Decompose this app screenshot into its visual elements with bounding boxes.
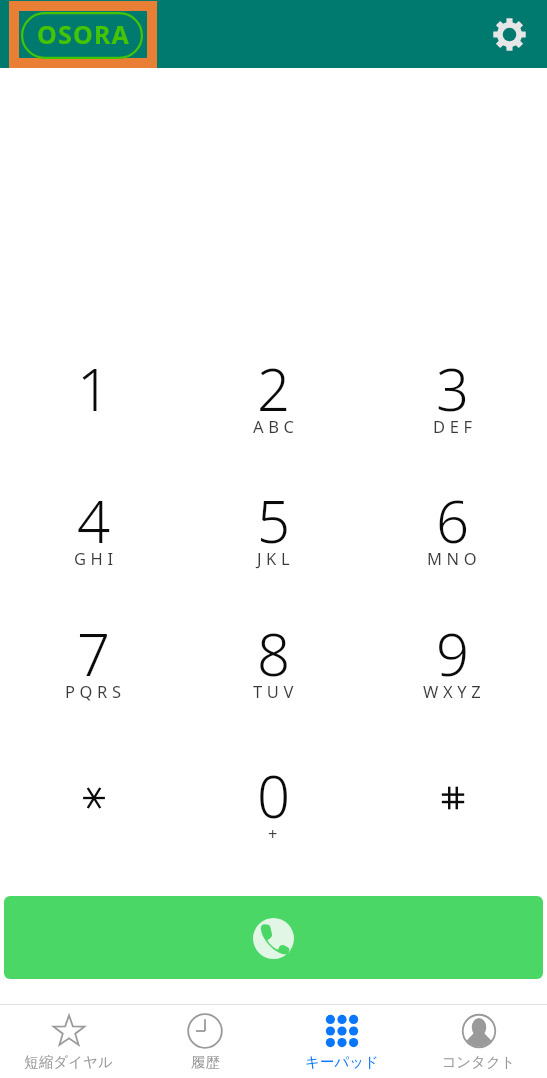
button[interactable]: pound (363, 745, 542, 865)
other: star (81, 785, 107, 811)
button[interactable]: 1 (4, 338, 183, 458)
other: pound (440, 785, 466, 811)
staticText: 0 (257, 756, 291, 835)
staticText: + (268, 822, 283, 844)
staticText: GHI (74, 547, 118, 569)
staticText: MNO (427, 547, 482, 569)
staticText: 9 (436, 614, 470, 693)
staticText: JKL (257, 547, 295, 569)
button[interactable]: star (4, 745, 183, 865)
staticText: 1 (77, 349, 111, 428)
staticText: DEF (433, 415, 477, 437)
button[interactable]: 短縮ダイヤル (0, 1005, 136, 1078)
staticText: 4 (77, 481, 111, 560)
staticText: ABC (253, 415, 299, 437)
staticText: 短縮ダイヤル (24, 1053, 113, 1071)
staticText: 2 (257, 349, 291, 428)
staticText: キーパッド (305, 1053, 379, 1071)
staticText: 8 (257, 614, 291, 693)
button[interactable]: OSORA (19, 11, 147, 58)
staticText: OSORA (37, 17, 131, 51)
button[interactable]: 3 (363, 338, 542, 458)
staticText: 5 (257, 481, 291, 560)
staticText: コンタクト (441, 1053, 516, 1071)
staticText: 7 (77, 614, 111, 693)
button[interactable]: 履歴 (136, 1005, 273, 1078)
button[interactable]: 2 (184, 338, 363, 458)
button[interactable]: 6 (363, 470, 542, 590)
button[interactable]: 0 (184, 745, 363, 865)
staticText: 履歴 (191, 1053, 220, 1071)
button[interactable]: 8 (184, 603, 363, 723)
staticText: PQRS (65, 680, 126, 702)
button[interactable]: Call (4, 896, 543, 979)
staticText: 3 (436, 349, 470, 428)
staticText: WXYZ (423, 680, 486, 702)
staticText: TUV (253, 680, 298, 702)
button[interactable]: 9 (363, 603, 542, 723)
button[interactable]: 4 (4, 470, 183, 590)
button[interactable]: Settings (481, 6, 537, 62)
staticText: 6 (436, 481, 470, 560)
button[interactable]: 7 (4, 603, 183, 723)
button[interactable]: 5 (184, 470, 363, 590)
button[interactable]: コンタクト (410, 1005, 547, 1078)
button[interactable]: キーパッド (273, 1005, 410, 1078)
